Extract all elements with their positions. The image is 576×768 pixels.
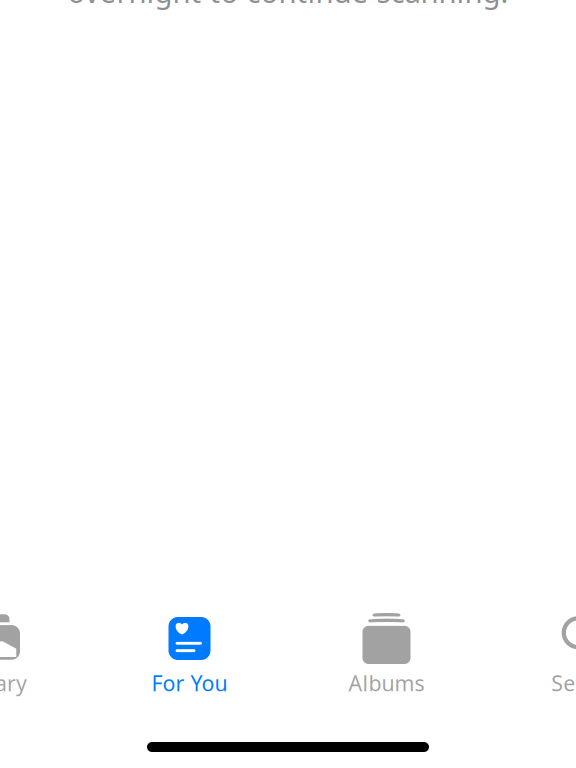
button[interactable]: Library <box>0 612 90 712</box>
button[interactable]: For You <box>91 612 287 712</box>
staticText: Library <box>0 669 27 697</box>
staticText: For You <box>151 669 227 697</box>
button[interactable]: Search <box>487 612 576 712</box>
staticText: Search <box>551 669 576 697</box>
staticText: overnight to continue scanning. <box>67 0 508 11</box>
staticText: Albums <box>348 669 424 697</box>
button[interactable]: Albums <box>288 612 484 712</box>
